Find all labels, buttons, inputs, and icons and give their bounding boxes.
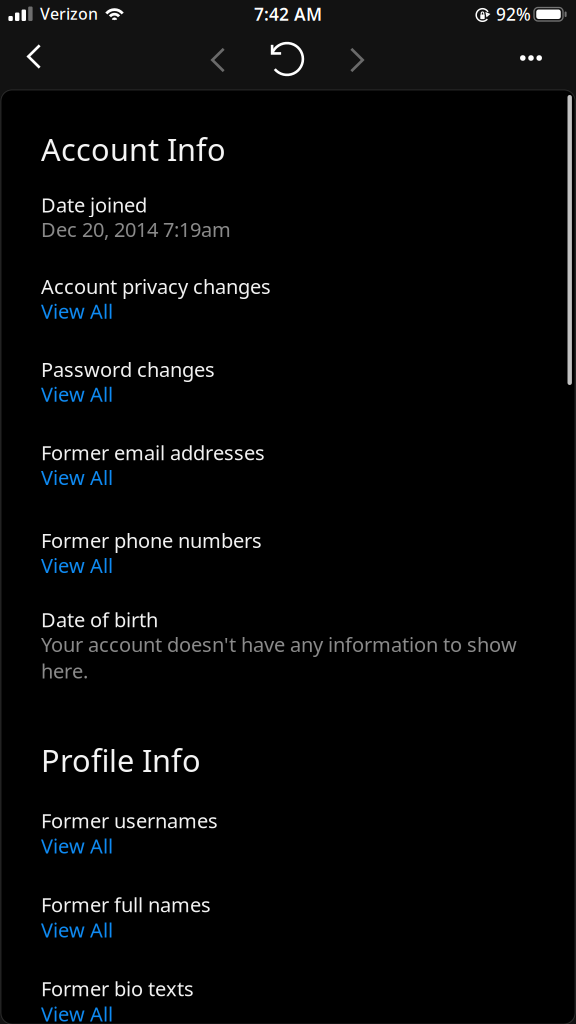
button[interactable]: View All (41, 916, 113, 943)
button[interactable]: View All (41, 552, 113, 579)
staticText: Former bio texts (41, 975, 194, 1002)
staticText: View All (41, 298, 113, 324)
button[interactable]: Reload (259, 31, 315, 87)
staticText: 92% (496, 2, 531, 25)
staticText: Profile Info (41, 740, 201, 780)
staticText: View All (41, 381, 113, 407)
button[interactable]: View All (41, 832, 113, 859)
staticText: Date of birth (41, 606, 158, 633)
staticText: Former email addresses (41, 439, 265, 466)
staticText: View All (41, 464, 113, 490)
button[interactable]: Back (6, 28, 62, 84)
button[interactable]: View All (41, 298, 113, 324)
staticText: View All (41, 916, 113, 943)
staticText: Former phone numbers (41, 527, 262, 554)
button[interactable]: View All (41, 464, 113, 490)
staticText: Verizon (40, 3, 98, 24)
button[interactable]: Go back (192, 32, 244, 88)
button[interactable]: View All (41, 1000, 113, 1024)
staticText: Password changes (41, 356, 215, 383)
staticText: Dec 20, 2014 7:19am (41, 216, 231, 243)
button[interactable]: View All (41, 381, 113, 407)
staticText: Account privacy changes (41, 273, 271, 300)
button[interactable]: More (503, 30, 559, 86)
staticText: Former full names (41, 891, 211, 918)
staticText: Date joined (41, 191, 147, 218)
staticText: 7:42 AM (254, 2, 322, 25)
button[interactable]: Go forward (331, 32, 383, 88)
staticText: View All (41, 832, 113, 859)
staticText: Account Info (41, 129, 226, 169)
staticText: View All (41, 552, 113, 579)
staticText: Your account doesn't have any informatio… (41, 631, 517, 684)
staticText: Former usernames (41, 807, 218, 834)
staticText: View All (41, 1000, 113, 1024)
